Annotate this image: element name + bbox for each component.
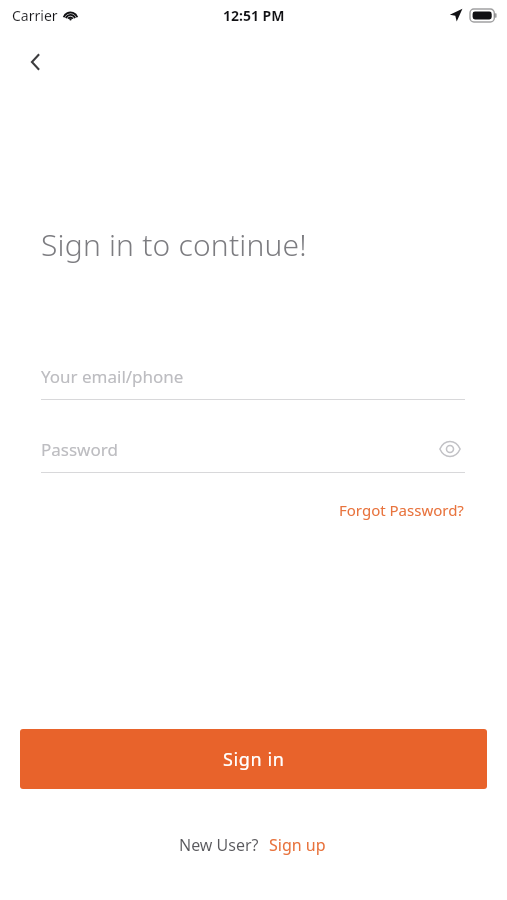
staticText: Sign up bbox=[269, 834, 326, 856]
staticText: Carrier bbox=[12, 6, 58, 25]
staticText: Sign in bbox=[223, 747, 285, 772]
button[interactable]: Back bbox=[14, 40, 58, 84]
button[interactable]: Show password bbox=[435, 434, 465, 464]
staticText: 12:51 PM bbox=[223, 6, 285, 25]
staticText: Forgot Password? bbox=[339, 500, 464, 520]
button[interactable]: Sign up bbox=[267, 830, 328, 860]
button[interactable]: Forgot Password? bbox=[337, 496, 466, 524]
button[interactable]: Your email/phone bbox=[41, 356, 465, 400]
button[interactable]: Sign in bbox=[20, 729, 487, 789]
staticText: New User? bbox=[179, 834, 259, 856]
staticText: Sign in to continue! bbox=[41, 224, 307, 265]
staticText: Password bbox=[41, 438, 118, 461]
button[interactable]: Password bbox=[41, 429, 465, 473]
staticText: Your email/phone bbox=[41, 365, 184, 388]
